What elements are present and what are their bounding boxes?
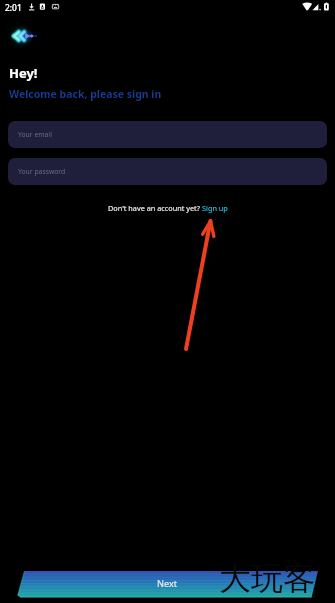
button[interactable]: Sign up bbox=[202, 203, 228, 213]
other: Logo bbox=[0, 0, 335, 603]
button[interactable]: Next bbox=[0, 568, 335, 599]
button[interactable]: Your email bbox=[8, 121, 327, 148]
staticText: Don't have an account yet? bbox=[108, 203, 202, 213]
staticText: Hey! bbox=[9, 64, 38, 82]
staticText: Welcome back, please sign in bbox=[9, 87, 162, 101]
staticText: 2:01 bbox=[5, 2, 22, 13]
staticText: Next bbox=[157, 577, 178, 590]
staticText: Your email bbox=[18, 130, 52, 139]
button[interactable]: Your password bbox=[8, 158, 327, 185]
staticText: 大玩客 bbox=[219, 558, 315, 598]
staticText: Sign up bbox=[202, 203, 228, 213]
staticText: Your password bbox=[18, 167, 66, 176]
